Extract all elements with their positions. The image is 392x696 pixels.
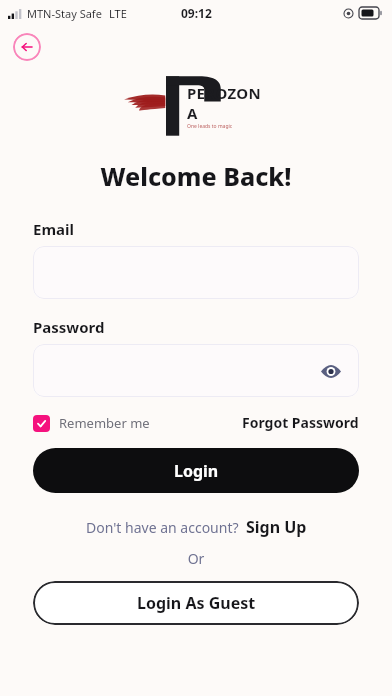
- staticText: LTE: [109, 6, 127, 21]
- button[interactable]: Login: [33, 448, 359, 493]
- button[interactable]: Sign Up: [246, 516, 307, 538]
- button[interactable]: Login As Guest: [33, 581, 359, 625]
- staticText: One leads to magic: [187, 123, 233, 130]
- button[interactable]: Show password: [33, 344, 359, 397]
- button[interactable]: Show password: [317, 357, 345, 385]
- staticText: Remember me: [59, 414, 150, 432]
- staticText: MTN-Stay Safe: [27, 6, 102, 21]
- staticText: Don't have an account?: [86, 518, 239, 537]
- staticText: 09:12: [181, 5, 212, 21]
- button[interactable]: Back: [13, 33, 41, 61]
- staticText: PEROZONA: [187, 83, 271, 123]
- staticText: Login As Guest: [137, 592, 256, 614]
- staticText: Welcome Back!: [0, 159, 392, 193]
- button[interactable]: Forgot Password: [242, 413, 359, 432]
- button[interactable]: Remember me: [33, 414, 150, 432]
- staticText: Or: [33, 549, 359, 568]
- staticText: Password: [33, 317, 105, 337]
- staticText: Login: [174, 460, 219, 482]
- staticText: Email: [33, 219, 74, 239]
- button[interactable]: [33, 246, 359, 299]
